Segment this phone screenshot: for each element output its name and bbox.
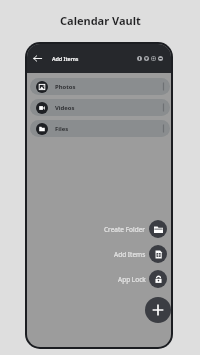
button[interactable]: Back (31, 52, 44, 65)
button[interactable]: Add Items (114, 245, 171, 263)
staticText: Add Items (52, 55, 79, 62)
staticText: Files (55, 125, 69, 133)
staticText: Calendar Vault (60, 13, 141, 28)
button[interactable]: Remove (158, 56, 163, 61)
button[interactable]: App Lock (118, 270, 171, 288)
button[interactable]: Create Folder (104, 220, 171, 238)
staticText: Add Items (114, 250, 146, 259)
button[interactable]: Grid view (151, 56, 156, 61)
button[interactable]: Videos (30, 99, 170, 116)
staticText: Videos (55, 104, 75, 112)
staticText: App Lock (118, 275, 146, 284)
button[interactable]: Photos (30, 78, 170, 95)
staticText: Create Folder (104, 225, 146, 234)
button[interactable]: Add (145, 297, 171, 323)
button[interactable]: Favorite (144, 56, 149, 61)
staticText: Photos (55, 83, 76, 91)
button[interactable]: Info (137, 56, 142, 61)
button[interactable]: Files (30, 120, 170, 137)
